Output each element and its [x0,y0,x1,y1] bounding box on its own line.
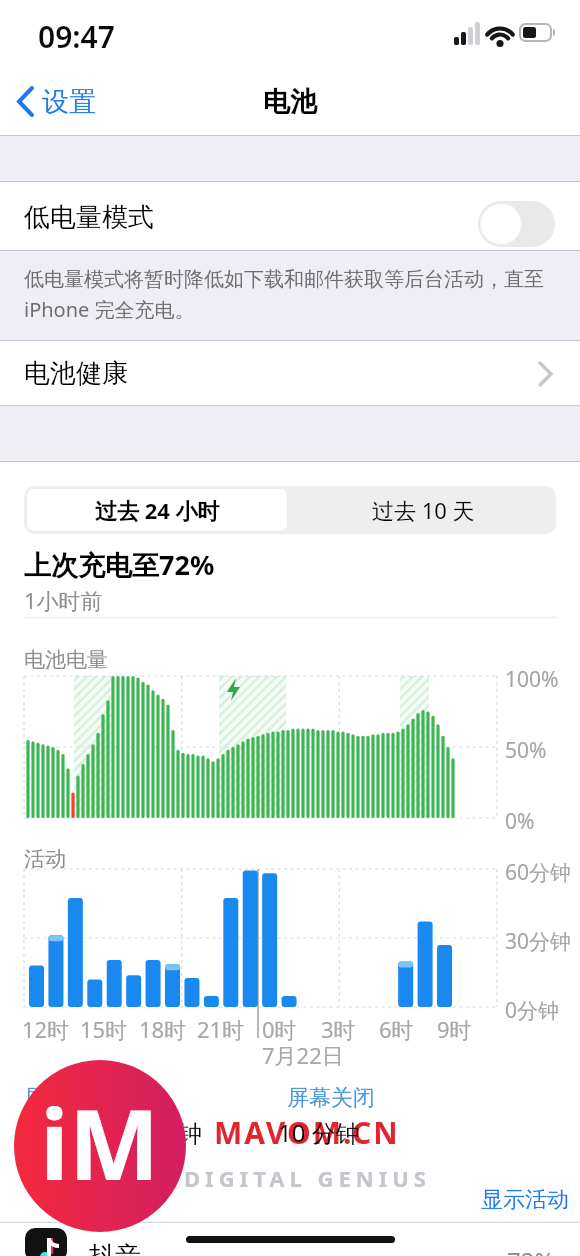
staticText: 活动 [24,846,66,872]
button[interactable]: 过去 24 小时 [26,488,288,532]
staticText: iM [40,1077,160,1208]
staticText: 7月22日 [262,1040,344,1070]
staticText: 12时 [22,1014,70,1044]
staticText: MAVOM.CN [214,1112,400,1153]
staticText: 30分钟 [505,927,572,956]
staticText: 过去 24 小时 [95,495,220,525]
staticText: 屏幕关闭 [287,1084,375,1112]
staticText: 9时 [437,1014,472,1044]
staticText: 低电量模式将暂时降低如下载和邮件获取等后台活动，直至 iPhone 完全充电。 [24,267,544,323]
button[interactable]: 显示活动 [451,1186,561,1214]
staticText: 0时 [262,1014,297,1044]
staticText: 抖音 [89,1240,141,1256]
staticText: 电池 [263,85,317,119]
staticText: 100% [505,665,559,694]
staticText: 0分钟 [505,996,560,1025]
staticText: 显示活动 [481,1186,569,1214]
staticText: DIGITAL GENIUS [184,1163,431,1193]
staticText: 过去 10 天 [372,495,475,525]
button[interactable]: 电池健康 [0,341,580,405]
button[interactable]: 设置 [10,82,120,122]
staticText: 3 小时 14 分钟 [46,1116,202,1149]
staticText: 6时 [379,1014,414,1044]
staticText: 上次充电至72% [24,546,215,583]
staticText: 15时 [80,1014,128,1044]
staticText: 21时 [197,1014,245,1044]
button[interactable]: 屏幕关闭 [251,1084,411,1112]
staticText: 屏幕开启 [24,1084,112,1112]
staticText: 低电量模式 [24,201,154,234]
button[interactable]: 抖音 [0,1223,580,1256]
staticText: 电池健康 [24,357,128,390]
staticText: 18时 [139,1014,187,1044]
staticText: 0% [505,807,535,836]
button[interactable]: 低电量模式 [0,182,580,250]
staticText: 60分钟 [505,858,572,887]
button[interactable]: 过去 10 天 [290,486,556,534]
staticText: 10 分钟 [278,1116,360,1149]
staticText: 电池电量 [24,647,108,673]
staticText: 设置 [42,85,96,119]
button[interactable] [478,201,555,247]
staticText: 09:47 [38,16,115,57]
staticText: 3时 [321,1014,356,1044]
staticText: 50% [505,736,547,765]
staticText: 1小时前 [24,585,103,615]
staticText: 72% [507,1244,555,1256]
